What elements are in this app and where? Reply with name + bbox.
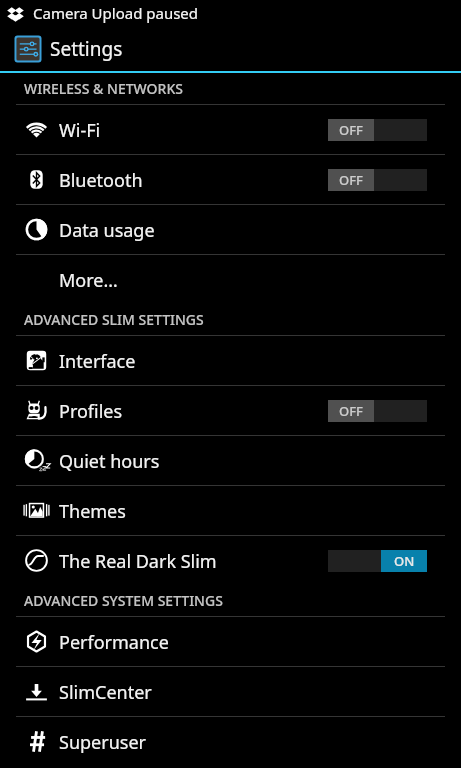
staticText: ADVANCED SYSTEM SETTINGS (24, 591, 223, 610)
staticText: ADVANCED SLIM SETTINGS (24, 310, 204, 329)
button[interactable]: Themes (0, 486, 461, 535)
staticText: WIRELESS & NETWORKS (24, 79, 183, 98)
button[interactable]: Interface (0, 336, 461, 385)
button[interactable]: Bluetooth (0, 155, 461, 204)
button[interactable]: More… (0, 255, 461, 304)
button[interactable]: SlimCenter (0, 667, 461, 716)
staticText: Quiet hours (59, 449, 160, 474)
staticText: Bluetooth (59, 168, 143, 193)
staticText: Superuser (59, 730, 146, 755)
button[interactable]: Profiles (0, 386, 461, 435)
button[interactable]: Wi-Fi (0, 105, 461, 154)
button[interactable]: Settings (0, 26, 461, 71)
button[interactable]: Performance (0, 617, 461, 666)
button[interactable]: Superuser (0, 717, 461, 766)
staticText: Themes (59, 499, 126, 524)
staticText: Performance (59, 630, 169, 655)
button[interactable]: The Real Dark Slim (0, 536, 461, 585)
staticText: OFF (339, 121, 363, 139)
staticText: Interface (59, 349, 136, 374)
button[interactable]: Data usage (0, 205, 461, 254)
staticText: ON (394, 552, 415, 570)
staticText: OFF (339, 402, 363, 420)
staticText: Data usage (59, 218, 155, 243)
staticText: Profiles (59, 399, 123, 424)
staticText: SlimCenter (59, 680, 152, 705)
staticText: Settings (50, 36, 123, 62)
staticText: Camera Upload paused (33, 3, 199, 23)
button[interactable]: Quiet hours (0, 436, 461, 485)
staticText: More… (59, 268, 118, 293)
staticText: The Real Dark Slim (59, 549, 217, 574)
staticText: Wi-Fi (59, 118, 101, 143)
staticText: OFF (339, 171, 363, 189)
